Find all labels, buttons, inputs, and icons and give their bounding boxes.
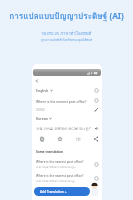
staticText: ฐานการแปลที่เข้าใจบริบทของคุณได้ทันที: [0, 38, 133, 43]
button[interactable]: More: [94, 162, 99, 167]
button[interactable]: Edit: [94, 107, 99, 112]
staticText: Korean: [36, 116, 48, 121]
staticText: Where is the nearest post office?: [36, 174, 84, 178]
button[interactable]: English: [36, 88, 53, 93]
button[interactable]: Translate: [75, 136, 81, 142]
button[interactable]: Share: [93, 136, 99, 142]
staticText: Where is the nearest post office?: [36, 99, 87, 103]
button[interactable]: Back: [34, 78, 40, 84]
staticText: Some translation: [36, 150, 64, 154]
button[interactable]: Korean: [36, 116, 52, 121]
button[interactable]: Add Translation +: [34, 187, 90, 196]
staticText: Where is the nearest post office?: [36, 160, 84, 164]
staticText: Add Translation +: [40, 190, 67, 194]
staticText: English: [36, 88, 49, 93]
button[interactable]: Switch: [94, 88, 99, 93]
button[interactable]: Listen: [94, 126, 99, 131]
button[interactable]: Where is the nearest post office?: [36, 160, 99, 168]
staticText: รองรับ 25 ภาษาทั่วโลกทันที: [0, 30, 133, 37]
staticText: การแปลแบบปัญญาประดิษฐ์ (AI): [0, 10, 133, 23]
staticText: 32/500: [36, 108, 45, 112]
button[interactable]: Where is the nearest post office?: [36, 174, 99, 182]
staticText: 가장 가까운 우체국이 어디에 있나요?: [36, 126, 91, 131]
button[interactable]: Copy: [39, 136, 45, 142]
staticText: 가장 가까운 우체국이 어디에 있나요?: [36, 179, 76, 182]
button[interactable]: More: [94, 176, 99, 181]
button[interactable]: Favorite: [57, 136, 63, 142]
staticText: 가장 가까운 우체국이 어디에 있나요?: [36, 165, 76, 168]
button[interactable]: Clear: [94, 98, 99, 103]
